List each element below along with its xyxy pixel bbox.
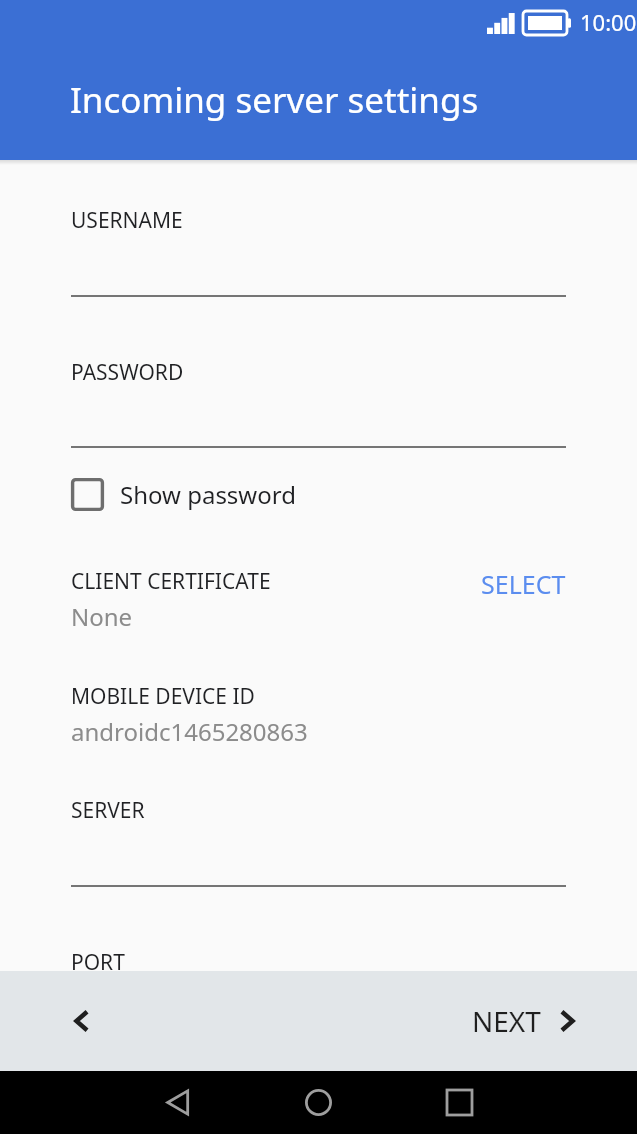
button[interactable]: Previous [44, 971, 120, 1071]
staticText: MOBILE DEVICE ID [71, 682, 255, 711]
staticText: USERNAME [71, 206, 183, 235]
button[interactable]: NEXT [472, 971, 581, 1071]
button[interactable]: Back [138, 1071, 218, 1134]
staticText: Incoming server settings [70, 76, 479, 124]
staticText: 10:00 [580, 7, 637, 37]
staticText: None [71, 600, 133, 633]
staticText: Show password [120, 478, 296, 511]
button[interactable]: Recent apps [419, 1071, 499, 1134]
staticText: androidc1465280863 [71, 715, 308, 748]
staticText: PASSWORD [71, 358, 184, 387]
staticText: SELECT [481, 567, 566, 601]
button[interactable]: Home [278, 1071, 358, 1134]
staticText: NEXT [472, 1002, 541, 1040]
button[interactable]: Show password [71, 468, 296, 520]
button[interactable]: SELECT [420, 556, 566, 612]
staticText: CLIENT CERTIFICATE [71, 567, 271, 596]
staticText: PORT [71, 948, 125, 971]
staticText: SERVER [71, 796, 145, 825]
